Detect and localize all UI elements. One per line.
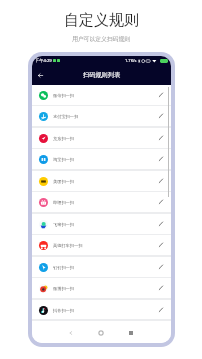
button[interactable]: 编辑	[156, 262, 166, 272]
staticText: 自定义规则	[64, 11, 139, 30]
button[interactable]: 编辑	[156, 283, 166, 293]
button[interactable]: 编辑	[156, 133, 166, 143]
button[interactable]: 编辑	[156, 305, 166, 315]
button[interactable]: 钉钉扫一扫	[32, 257, 171, 277]
staticText: 用户可以定义扫码规则	[72, 35, 130, 42]
staticText: 高德打车扫一扫	[53, 243, 83, 248]
button[interactable]: 微信扫一扫	[32, 85, 171, 105]
button[interactable]: 编辑	[156, 154, 166, 164]
button[interactable]: 微博扫一扫	[32, 278, 171, 298]
staticText: 淘宝扫一扫	[53, 157, 74, 162]
staticText: 飞猪扫一扫	[53, 222, 74, 227]
button[interactable]: 美团扫一扫	[32, 171, 171, 191]
button[interactable]: 支付宝扫一扫	[32, 106, 171, 126]
staticText: 支付宝扫一扫	[53, 114, 79, 119]
button[interactable]: 编辑	[156, 90, 166, 100]
button[interactable]: 最近任务	[123, 325, 139, 341]
staticText: 下午4:29	[35, 58, 52, 64]
staticText: 扫码规则列表	[83, 71, 121, 79]
button[interactable]: 飞猪扫一扫	[32, 214, 171, 234]
staticText: 美团扫一扫	[53, 179, 74, 184]
staticText: 微博扫一扫	[53, 286, 74, 291]
staticText: 抖音扫一扫	[53, 308, 74, 313]
button[interactable]: 淘宝扫一扫	[32, 149, 171, 169]
button[interactable]: 抖音扫一扫	[32, 300, 171, 320]
button[interactable]: 编辑	[156, 176, 166, 186]
button[interactable]: 主页	[93, 325, 109, 341]
button[interactable]: 编辑	[156, 240, 166, 250]
button[interactable]: 编辑	[156, 111, 166, 121]
button[interactable]: 返回	[63, 325, 79, 341]
staticText: 1.7K/s	[125, 58, 137, 63]
button[interactable]: 编辑	[156, 219, 166, 229]
staticText: 京东扫一扫	[53, 136, 74, 141]
staticText: 哔哩扫一扫	[53, 200, 74, 205]
button[interactable]: 哔哩扫一扫	[32, 192, 171, 212]
button[interactable]: 高德打车扫一扫	[32, 235, 171, 255]
staticText: 微信扫一扫	[53, 93, 74, 98]
button[interactable]: 京东扫一扫	[32, 128, 171, 148]
staticText: 钉钉扫一扫	[53, 265, 74, 270]
button[interactable]: 编辑	[156, 197, 166, 207]
button[interactable]: 返回	[32, 65, 48, 85]
